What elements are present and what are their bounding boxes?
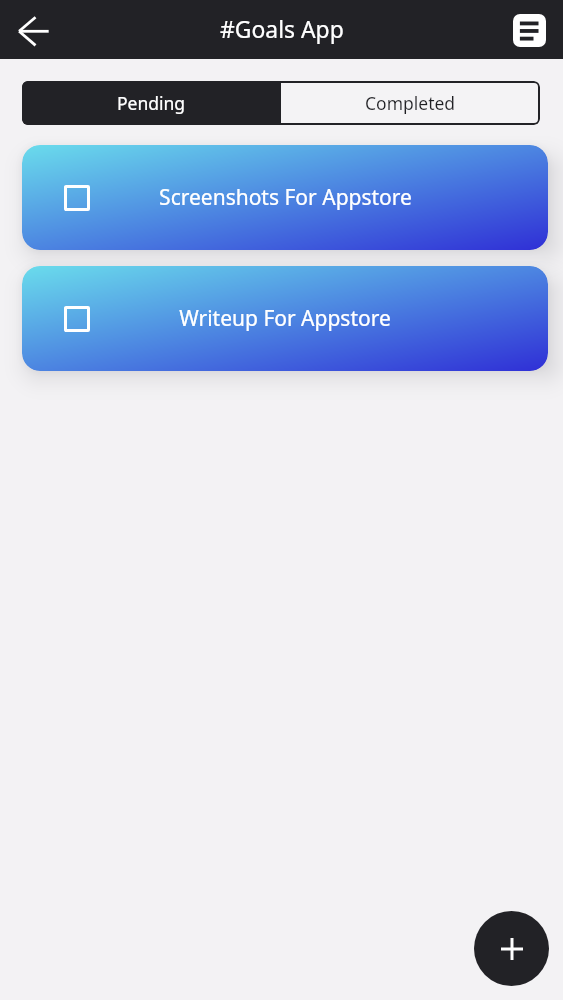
button[interactable]: Pending [22, 81, 281, 125]
staticText: Completed [365, 91, 456, 115]
button[interactable]: Menu [508, 9, 550, 51]
staticText: Writeup For Appstore [179, 304, 391, 333]
button[interactable]: Writeup For Appstore [22, 266, 548, 371]
button[interactable]: Screenshots For Appstore [22, 145, 548, 250]
staticText: Pending [117, 91, 186, 115]
button[interactable]: Back [9, 6, 57, 54]
button[interactable]: Completed [281, 81, 540, 125]
staticText: Screenshots For Appstore [159, 183, 412, 212]
staticText: #Goals App [220, 14, 344, 45]
button[interactable]: Add task [474, 911, 549, 986]
